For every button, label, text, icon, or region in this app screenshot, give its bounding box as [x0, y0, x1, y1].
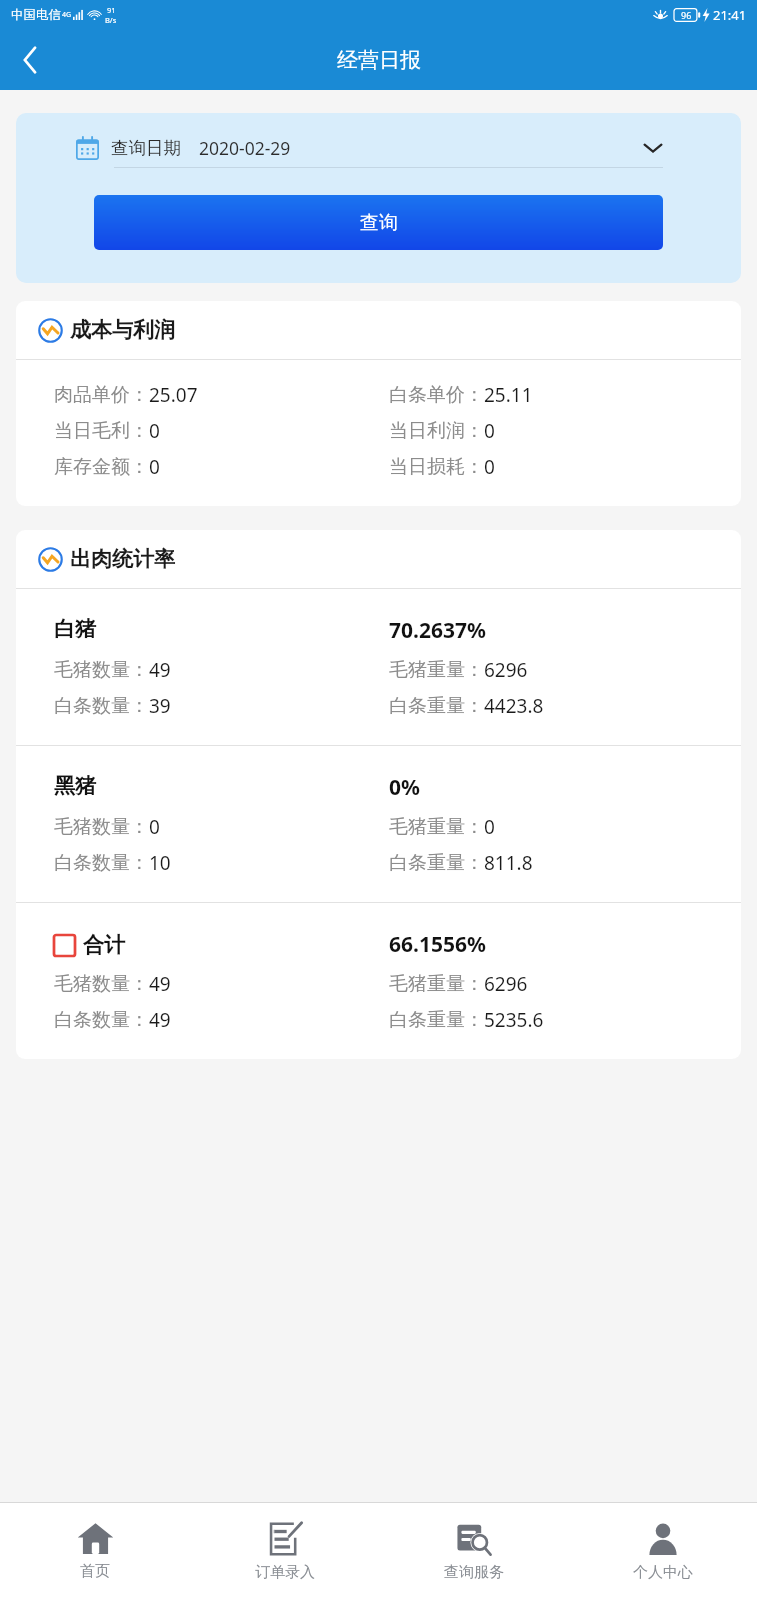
staticText: 0: [484, 418, 495, 444]
staticText: 5235.6: [484, 1007, 544, 1033]
staticText: 当日损耗：: [389, 455, 484, 479]
staticText: 811.8: [484, 850, 533, 876]
staticText: 2020-02-29: [199, 136, 291, 160]
staticText: 首页: [80, 1562, 110, 1581]
staticText: 6296: [484, 657, 528, 683]
staticText: 个人中心: [633, 1563, 693, 1582]
staticText: 白条数量：: [54, 1008, 149, 1032]
staticText: 当日利润：: [389, 419, 484, 443]
staticText: 6296: [484, 971, 528, 997]
staticText: 毛猪重量：: [389, 972, 484, 996]
staticText: 25.11: [484, 382, 533, 408]
staticText: 70.2637%: [389, 616, 725, 645]
staticText: 经营日报: [337, 47, 421, 73]
staticText: 中国电信: [11, 7, 61, 23]
staticText: 当日毛利：: [54, 419, 149, 443]
staticText: 毛猪重量：: [389, 658, 484, 682]
staticText: 查询服务: [444, 1563, 504, 1582]
staticText: 出肉统计率: [70, 546, 175, 572]
staticText: 10: [149, 850, 171, 876]
button[interactable]: 订单录入: [190, 1503, 379, 1600]
staticText: 白条重量：: [389, 1008, 484, 1032]
staticText: 96: [681, 9, 692, 21]
staticText: 49: [149, 1007, 171, 1033]
staticText: 66.1556%: [389, 930, 725, 959]
staticText: 查询日期: [111, 137, 181, 159]
staticText: 毛猪数量：: [54, 972, 149, 996]
button[interactable]: 个人中心: [568, 1503, 757, 1600]
staticText: 21:41: [713, 6, 747, 24]
staticText: 0: [484, 454, 495, 480]
staticText: 49: [149, 971, 171, 997]
staticText: 毛猪重量：: [389, 815, 484, 839]
staticText: 白条重量：: [389, 694, 484, 718]
staticText: 成本与利润: [70, 317, 175, 343]
staticText: 49: [149, 657, 171, 683]
staticText: 查询: [360, 211, 398, 235]
button[interactable]: 首页: [0, 1503, 190, 1600]
staticText: 0: [149, 454, 160, 480]
button[interactable]: 合计: [16, 903, 741, 1059]
button[interactable]: 黑猪: [16, 746, 741, 902]
staticText: 白条数量：: [54, 694, 149, 718]
button[interactable]: 查询日期: [76, 136, 663, 160]
staticText: 4G: [62, 10, 72, 20]
staticText: 毛猪数量：: [54, 658, 149, 682]
staticText: 白条重量：: [389, 851, 484, 875]
button[interactable]: 白猪: [16, 589, 741, 745]
staticText: 4423.8: [484, 693, 544, 719]
staticText: 库存金额：: [54, 455, 149, 479]
button[interactable]: Back: [0, 30, 60, 90]
staticText: 0%: [389, 773, 725, 802]
staticText: 91: [107, 5, 116, 15]
staticText: 白条单价：: [389, 383, 484, 407]
staticText: B/s: [105, 15, 117, 25]
staticText: 订单录入: [255, 1563, 315, 1582]
staticText: 黑猪: [54, 773, 389, 799]
staticText: 毛猪数量：: [54, 815, 149, 839]
staticText: 0: [484, 814, 495, 840]
staticText: 白条数量：: [54, 851, 149, 875]
button[interactable]: 查询: [94, 195, 663, 250]
staticText: 25.07: [149, 382, 198, 408]
staticText: 肉品单价：: [54, 383, 149, 407]
button[interactable]: 查询服务: [379, 1503, 568, 1600]
staticText: 39: [149, 693, 171, 719]
staticText: 合计: [83, 932, 125, 958]
staticText: 白猪: [54, 616, 389, 642]
staticText: 0: [149, 814, 160, 840]
staticText: 0: [149, 418, 160, 444]
